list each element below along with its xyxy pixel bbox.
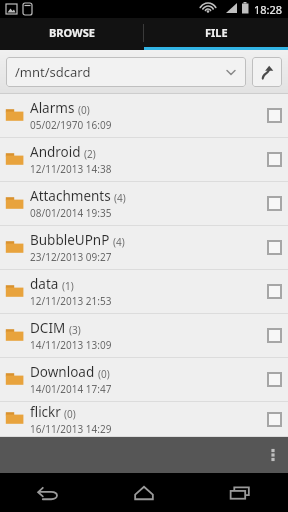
- staticText: 18:28: [254, 2, 283, 17]
- staticText: Download: [30, 363, 95, 381]
- button[interactable]: Back: [0, 473, 96, 512]
- staticText: (0): [64, 407, 76, 421]
- button[interactable]: Go up one directory: [252, 57, 282, 87]
- button[interactable]: Select Attachments: [267, 196, 282, 211]
- button[interactable]: Select DCIM: [267, 328, 282, 343]
- staticText: 12/11/2013 14:38: [30, 162, 112, 176]
- staticText: 08/01/2014 19:35: [30, 206, 112, 220]
- button[interactable]: Recent apps: [192, 473, 288, 512]
- button[interactable]: Home: [96, 473, 192, 512]
- staticText: 16/11/2013 14:29: [30, 422, 112, 436]
- button[interactable]: Select Android: [267, 152, 282, 167]
- staticText: FILE: [205, 25, 228, 40]
- staticText: 23/12/2013 09:27: [30, 250, 112, 264]
- staticText: (4): [114, 191, 126, 205]
- button[interactable]: Select flickr: [267, 412, 282, 427]
- staticText: 05/02/1970 16:09: [30, 118, 112, 132]
- button[interactable]: /mnt/sdcard: [6, 57, 246, 87]
- button[interactable]: BROWSE: [0, 18, 143, 47]
- staticText: (3): [69, 323, 81, 337]
- staticText: Android: [30, 143, 81, 161]
- staticText: BubbleUPnP: [30, 231, 110, 249]
- staticText: 14/11/2013 13:09: [30, 338, 112, 352]
- button[interactable]: data: [0, 270, 288, 314]
- button[interactable]: Select data: [267, 284, 282, 299]
- button[interactable]: Select BubbleUPnP: [267, 240, 282, 255]
- staticText: 12/11/2013 21:53: [30, 294, 112, 308]
- staticText: data: [30, 275, 59, 293]
- button[interactable]: FILE: [144, 18, 288, 47]
- staticText: Attachments: [30, 187, 111, 205]
- staticText: (0): [98, 367, 110, 381]
- staticText: (4): [113, 235, 125, 249]
- staticText: flickr: [30, 403, 61, 421]
- button[interactable]: Select Download: [267, 372, 282, 387]
- staticText: (2): [84, 147, 96, 161]
- button[interactable]: Select Alarms: [267, 108, 282, 123]
- staticText: (0): [78, 103, 90, 117]
- staticText: DCIM: [30, 319, 66, 337]
- button[interactable]: flickr: [0, 402, 288, 437]
- staticText: BROWSE: [49, 25, 95, 40]
- staticText: /mnt/sdcard: [15, 63, 225, 81]
- button[interactable]: BubbleUPnP: [0, 226, 288, 270]
- button[interactable]: DCIM: [0, 314, 288, 358]
- button[interactable]: Attachments: [0, 182, 288, 226]
- button[interactable]: Android: [0, 138, 288, 182]
- staticText: Alarms: [30, 99, 75, 117]
- button[interactable]: More options: [258, 437, 288, 473]
- button[interactable]: Alarms: [0, 94, 288, 138]
- staticText: 14/01/2014 17:47: [30, 382, 112, 396]
- button[interactable]: Download: [0, 358, 288, 402]
- staticText: (1): [62, 279, 74, 293]
